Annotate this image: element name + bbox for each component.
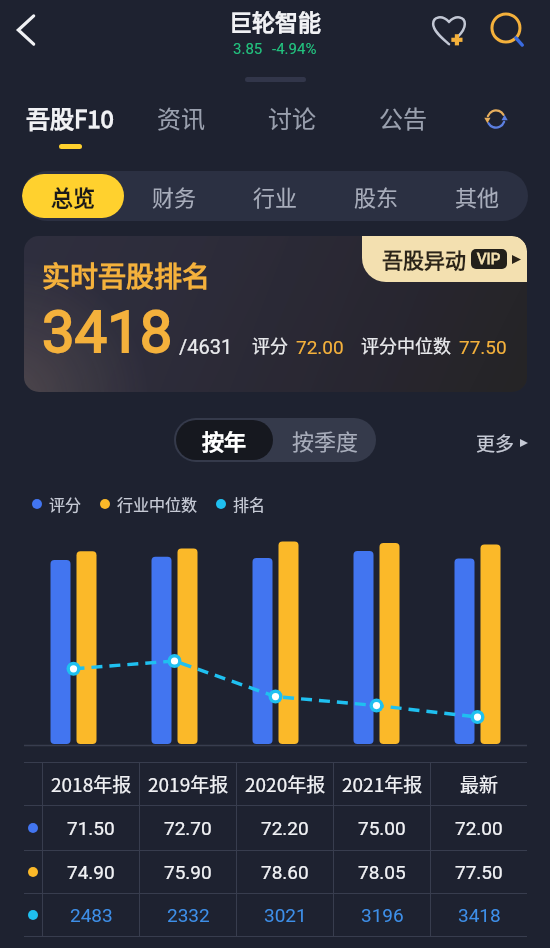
staticText: 71.50 — [67, 817, 115, 839]
staticText: 72.70 — [164, 817, 212, 839]
staticText: 2483 — [70, 904, 113, 926]
staticText: 75.90 — [164, 861, 212, 883]
button[interactable]: 实时吾股排名 — [24, 236, 527, 392]
staticText: 评分 — [252, 332, 288, 358]
button[interactable]: 吾股异动 — [362, 236, 527, 282]
button[interactable]: Back — [0, 4, 52, 56]
staticText: 行业 — [253, 180, 298, 212]
staticText: 3.85 — [233, 40, 263, 58]
button[interactable]: Refresh — [470, 93, 521, 144]
staticText: 公告 — [379, 100, 427, 135]
button[interactable]: 更多 — [476, 429, 528, 457]
staticText: 评分中位数 — [361, 332, 451, 358]
staticText: 78.05 — [358, 861, 406, 883]
button[interactable]: 其他 — [427, 174, 528, 218]
button[interactable]: Add to watchlist — [423, 3, 475, 55]
staticText: 讨论 — [268, 100, 316, 135]
staticText: 77.50 — [459, 336, 507, 358]
staticText: 吾股异动 — [382, 244, 466, 274]
staticText: 74.90 — [67, 861, 115, 883]
staticText: 2019年报 — [148, 770, 229, 798]
button[interactable]: Search — [483, 5, 535, 57]
button[interactable]: 吾股F10 — [15, 91, 125, 153]
staticText: 72.20 — [261, 817, 309, 839]
staticText: 巨轮智能 — [229, 4, 321, 37]
staticText: 77.50 — [455, 861, 503, 883]
staticText: 其他 — [455, 180, 500, 212]
staticText: 72.00 — [296, 336, 344, 358]
staticText: 3021 — [264, 904, 307, 926]
staticText: 行业中位数 — [117, 492, 198, 515]
staticText: 排名 — [233, 492, 266, 515]
button[interactable]: 按季度 — [275, 418, 376, 462]
staticText: 总览 — [51, 180, 96, 212]
button[interactable]: 总览 — [22, 174, 124, 218]
staticText: VIP — [477, 250, 501, 268]
staticText: -4.94% — [272, 40, 317, 58]
staticText: 2018年报 — [51, 770, 132, 798]
staticText: 3418 — [458, 904, 501, 926]
staticText: 资讯 — [157, 100, 205, 135]
button[interactable]: 股东 — [326, 174, 427, 218]
staticText: 3418 — [42, 298, 173, 366]
staticText: 财务 — [152, 180, 197, 212]
staticText: 72.00 — [455, 817, 503, 839]
staticText: 78.60 — [261, 861, 309, 883]
button[interactable]: 讨论 — [237, 91, 347, 153]
staticText: 按季度 — [292, 424, 359, 456]
button[interactable]: 公告 — [348, 91, 458, 153]
staticText: 股东 — [354, 180, 399, 212]
staticText: 3196 — [361, 904, 404, 926]
staticText: 吾股F10 — [26, 100, 114, 135]
staticText: 2020年报 — [245, 770, 326, 798]
staticText: 75.00 — [358, 817, 406, 839]
button[interactable]: 财务 — [124, 174, 225, 218]
button[interactable]: 资讯 — [126, 91, 236, 153]
staticText: 更多 — [476, 429, 515, 457]
button[interactable]: 行业 — [225, 174, 326, 218]
staticText: 评分 — [49, 492, 82, 515]
staticText: 2332 — [167, 904, 210, 926]
staticText: /4631 — [179, 335, 233, 358]
staticText: 按年 — [202, 424, 247, 456]
staticText: 实时吾股排名 — [42, 255, 211, 296]
staticText: 2021年报 — [342, 770, 423, 798]
staticText: 最新 — [460, 770, 499, 798]
button[interactable]: 按年 — [176, 420, 273, 460]
